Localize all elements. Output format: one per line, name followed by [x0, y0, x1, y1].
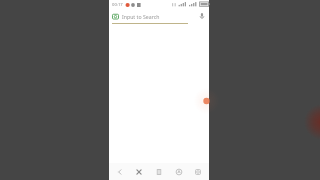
button[interactable]: Bookmarks	[150, 163, 168, 180]
button[interactable]: Search by image	[112, 13, 119, 20]
button[interactable]: Voice search	[198, 12, 206, 20]
button[interactable]: Tabs	[189, 163, 207, 180]
staticText: Input to Search	[122, 13, 198, 20]
button[interactable]: Close	[130, 163, 148, 180]
button[interactable]: Profile	[170, 163, 188, 180]
button[interactable]: Back	[111, 163, 129, 180]
staticText: 00:17	[112, 2, 123, 8]
button[interactable]: Search by image	[109, 9, 209, 23]
